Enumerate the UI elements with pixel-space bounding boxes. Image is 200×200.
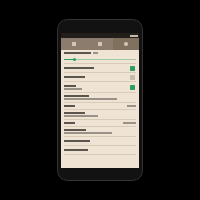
button[interactable]: Auto rotate (129, 74, 136, 80)
button[interactable]: Display (113, 38, 139, 50)
button[interactable]: Auto rotate (61, 73, 139, 81)
button[interactable] (61, 93, 139, 102)
button[interactable] (61, 127, 139, 136)
button[interactable] (61, 50, 139, 63)
button[interactable]: Wi-Fi (61, 82, 139, 92)
button[interactable] (61, 110, 139, 119)
button[interactable]: Wi-Fi (129, 84, 136, 90)
button[interactable] (61, 137, 139, 145)
button[interactable]: Notifications (61, 38, 87, 50)
button[interactable]: Sound (87, 38, 113, 50)
button[interactable]: Vibrate on touch (129, 65, 136, 71)
button[interactable] (61, 146, 139, 154)
button[interactable] (61, 103, 139, 109)
button[interactable] (61, 120, 139, 126)
button[interactable]: Vibrate on touch (61, 64, 139, 72)
